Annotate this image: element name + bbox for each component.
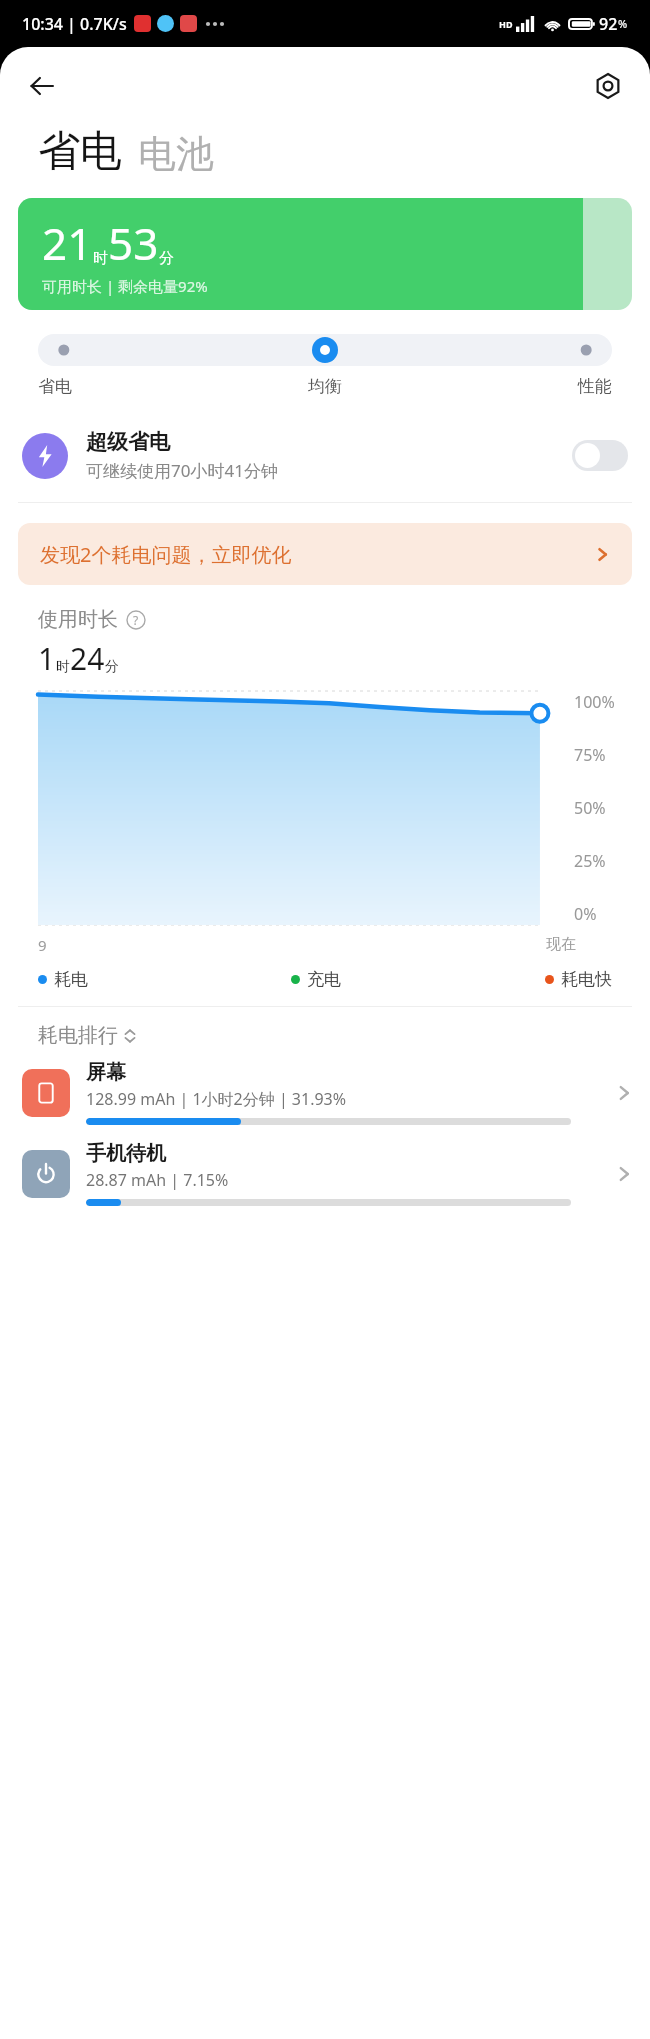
button[interactable]: 充电 [291, 969, 341, 990]
button[interactable]: 超级省电 [0, 423, 650, 488]
button[interactable]: Help [126, 610, 146, 630]
staticText: 时 [93, 249, 108, 268]
staticText: 充电 [307, 969, 341, 990]
staticText: 超级省电 [86, 429, 170, 455]
staticText: 92 [599, 13, 618, 35]
staticText: 手机待机 [86, 1141, 166, 1166]
staticText: 耗电 [54, 969, 88, 990]
staticText: 1 [38, 638, 56, 679]
staticText: 屏幕 [86, 1060, 126, 1085]
staticText: 128.99 mAh | 1小时2分钟 | 31.93% [86, 1088, 347, 1110]
staticText: 28.87 mAh | 7.15% [86, 1169, 229, 1191]
staticText: 使用时长 [38, 607, 118, 632]
staticText: 0% [574, 903, 597, 925]
staticText: 可用时长 | 剩余电量92% [42, 276, 208, 296]
staticText: 50% [574, 797, 606, 819]
button[interactable]: 耗电快 [545, 969, 612, 990]
button[interactable]: 性能 [578, 376, 612, 397]
button[interactable]: Super power saving toggle [572, 440, 628, 471]
staticText: 分 [105, 658, 119, 676]
staticText: 现在 [546, 935, 576, 954]
staticText: 25% [574, 850, 606, 872]
staticText: 电池 [138, 130, 214, 178]
staticText: ? [133, 612, 139, 628]
staticText: 9 [38, 935, 47, 955]
button[interactable] [312, 337, 338, 363]
button[interactable]: 手机待机 [0, 1141, 650, 1206]
staticText: 发现2个耗电问题，立即优化 [40, 541, 292, 568]
button[interactable]: Back [14, 58, 70, 114]
staticText: 省电 [38, 125, 122, 178]
staticText: 24 [70, 638, 105, 679]
button[interactable]: 屏幕 [0, 1060, 650, 1125]
staticText: 分 [159, 249, 174, 268]
button[interactable]: 耗电排行 [38, 1023, 136, 1048]
staticText: 10:34 | 0.7K/s [22, 13, 127, 35]
button[interactable]: 发现2个耗电问题，立即优化 [18, 523, 632, 585]
staticText: HD [499, 18, 513, 30]
staticText: 时 [56, 658, 70, 676]
staticText: 53 [108, 213, 159, 273]
button[interactable]: 均衡 [308, 376, 342, 397]
button[interactable]: 21 [18, 198, 632, 310]
staticText: 可继续使用70小时41分钟 [86, 459, 278, 482]
button[interactable]: Settings [580, 58, 636, 114]
staticText: 21 [42, 213, 93, 273]
staticText: 耗电排行 [38, 1023, 118, 1048]
staticText: 75% [574, 744, 606, 766]
staticText: 100% [574, 691, 615, 713]
button[interactable]: 省电 [38, 376, 72, 397]
staticText: 耗电快 [561, 969, 612, 990]
button[interactable]: 耗电 [38, 969, 88, 990]
staticText: % [618, 16, 628, 31]
